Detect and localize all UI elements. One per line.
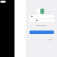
button[interactable]: [29, 30, 54, 34]
button[interactable]: [29, 15, 54, 18]
button[interactable]: [29, 19, 54, 22]
